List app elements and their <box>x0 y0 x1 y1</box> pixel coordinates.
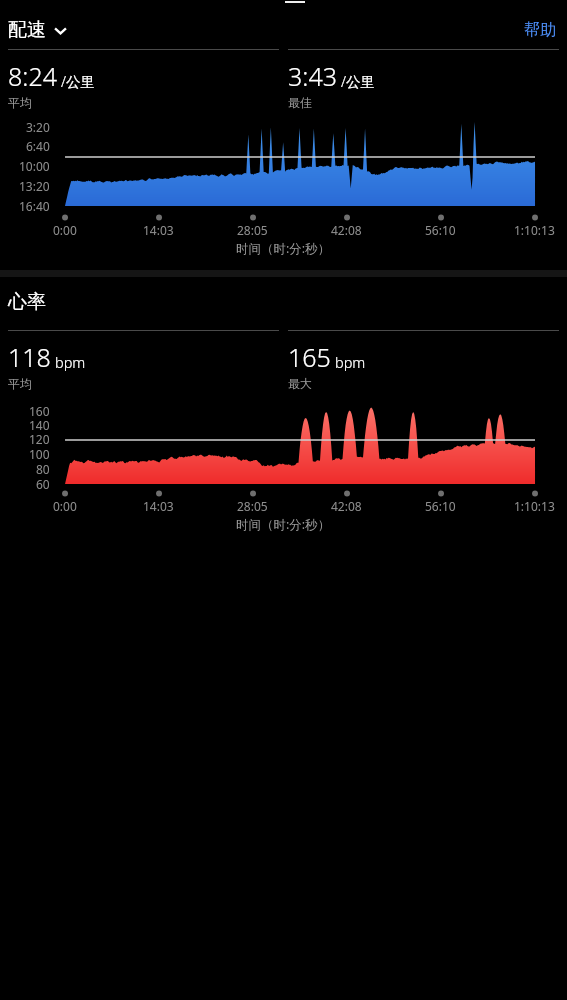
staticText: 最大 <box>288 376 312 391</box>
button[interactable]: 3:43 <box>288 49 559 110</box>
staticText: 16:40 <box>19 198 50 214</box>
staticText: 时间（时:分:秒） <box>236 516 331 533</box>
button[interactable]: 8:24 <box>8 49 279 110</box>
staticText: 60 <box>36 476 50 492</box>
staticText: /公里 <box>61 71 96 91</box>
staticText: 心率 <box>8 290 46 314</box>
staticText: bpm <box>335 352 366 372</box>
staticText: 165 <box>288 340 331 374</box>
staticText: 80 <box>36 461 50 477</box>
staticText: 平均 <box>8 376 32 391</box>
staticText: 0:00 <box>53 498 77 514</box>
staticText: 8:24 <box>8 59 57 93</box>
staticText: 14:03 <box>143 222 174 238</box>
button[interactable]: 配速 <box>8 18 67 42</box>
staticText: 1:10:13 <box>514 222 555 238</box>
staticText: 42:08 <box>331 498 362 514</box>
staticText: 配速 <box>8 18 46 42</box>
staticText: 0:00 <box>53 222 77 238</box>
staticText: 56:10 <box>425 222 456 238</box>
staticText: /公里 <box>341 71 376 91</box>
staticText: bpm <box>55 352 86 372</box>
staticText: 3:20 <box>26 119 50 135</box>
staticText: 140 <box>29 417 50 433</box>
button[interactable]: 118 <box>8 330 279 391</box>
staticText: 42:08 <box>331 222 362 238</box>
staticText: 平均 <box>8 95 32 110</box>
staticText: 14:03 <box>143 498 174 514</box>
staticText: 6:40 <box>26 138 50 154</box>
staticText: 最佳 <box>288 95 312 110</box>
staticText: 13:20 <box>19 178 50 194</box>
staticText: 3:43 <box>288 59 337 93</box>
staticText: 120 <box>29 431 50 447</box>
staticText: 100 <box>29 446 50 462</box>
staticText: 28:05 <box>237 222 268 238</box>
staticText: 10:00 <box>19 158 50 174</box>
staticText: 160 <box>29 403 50 419</box>
staticText: 时间（时:分:秒） <box>236 240 331 257</box>
button[interactable]: 165 <box>288 330 559 391</box>
staticText: 28:05 <box>237 498 268 514</box>
staticText: 118 <box>8 340 51 374</box>
staticText: 帮助 <box>524 20 556 40</box>
other: Change metric <box>54 24 67 37</box>
staticText: 1:10:13 <box>514 498 555 514</box>
button[interactable]: 帮助 <box>521 16 559 44</box>
staticText: 56:10 <box>425 498 456 514</box>
